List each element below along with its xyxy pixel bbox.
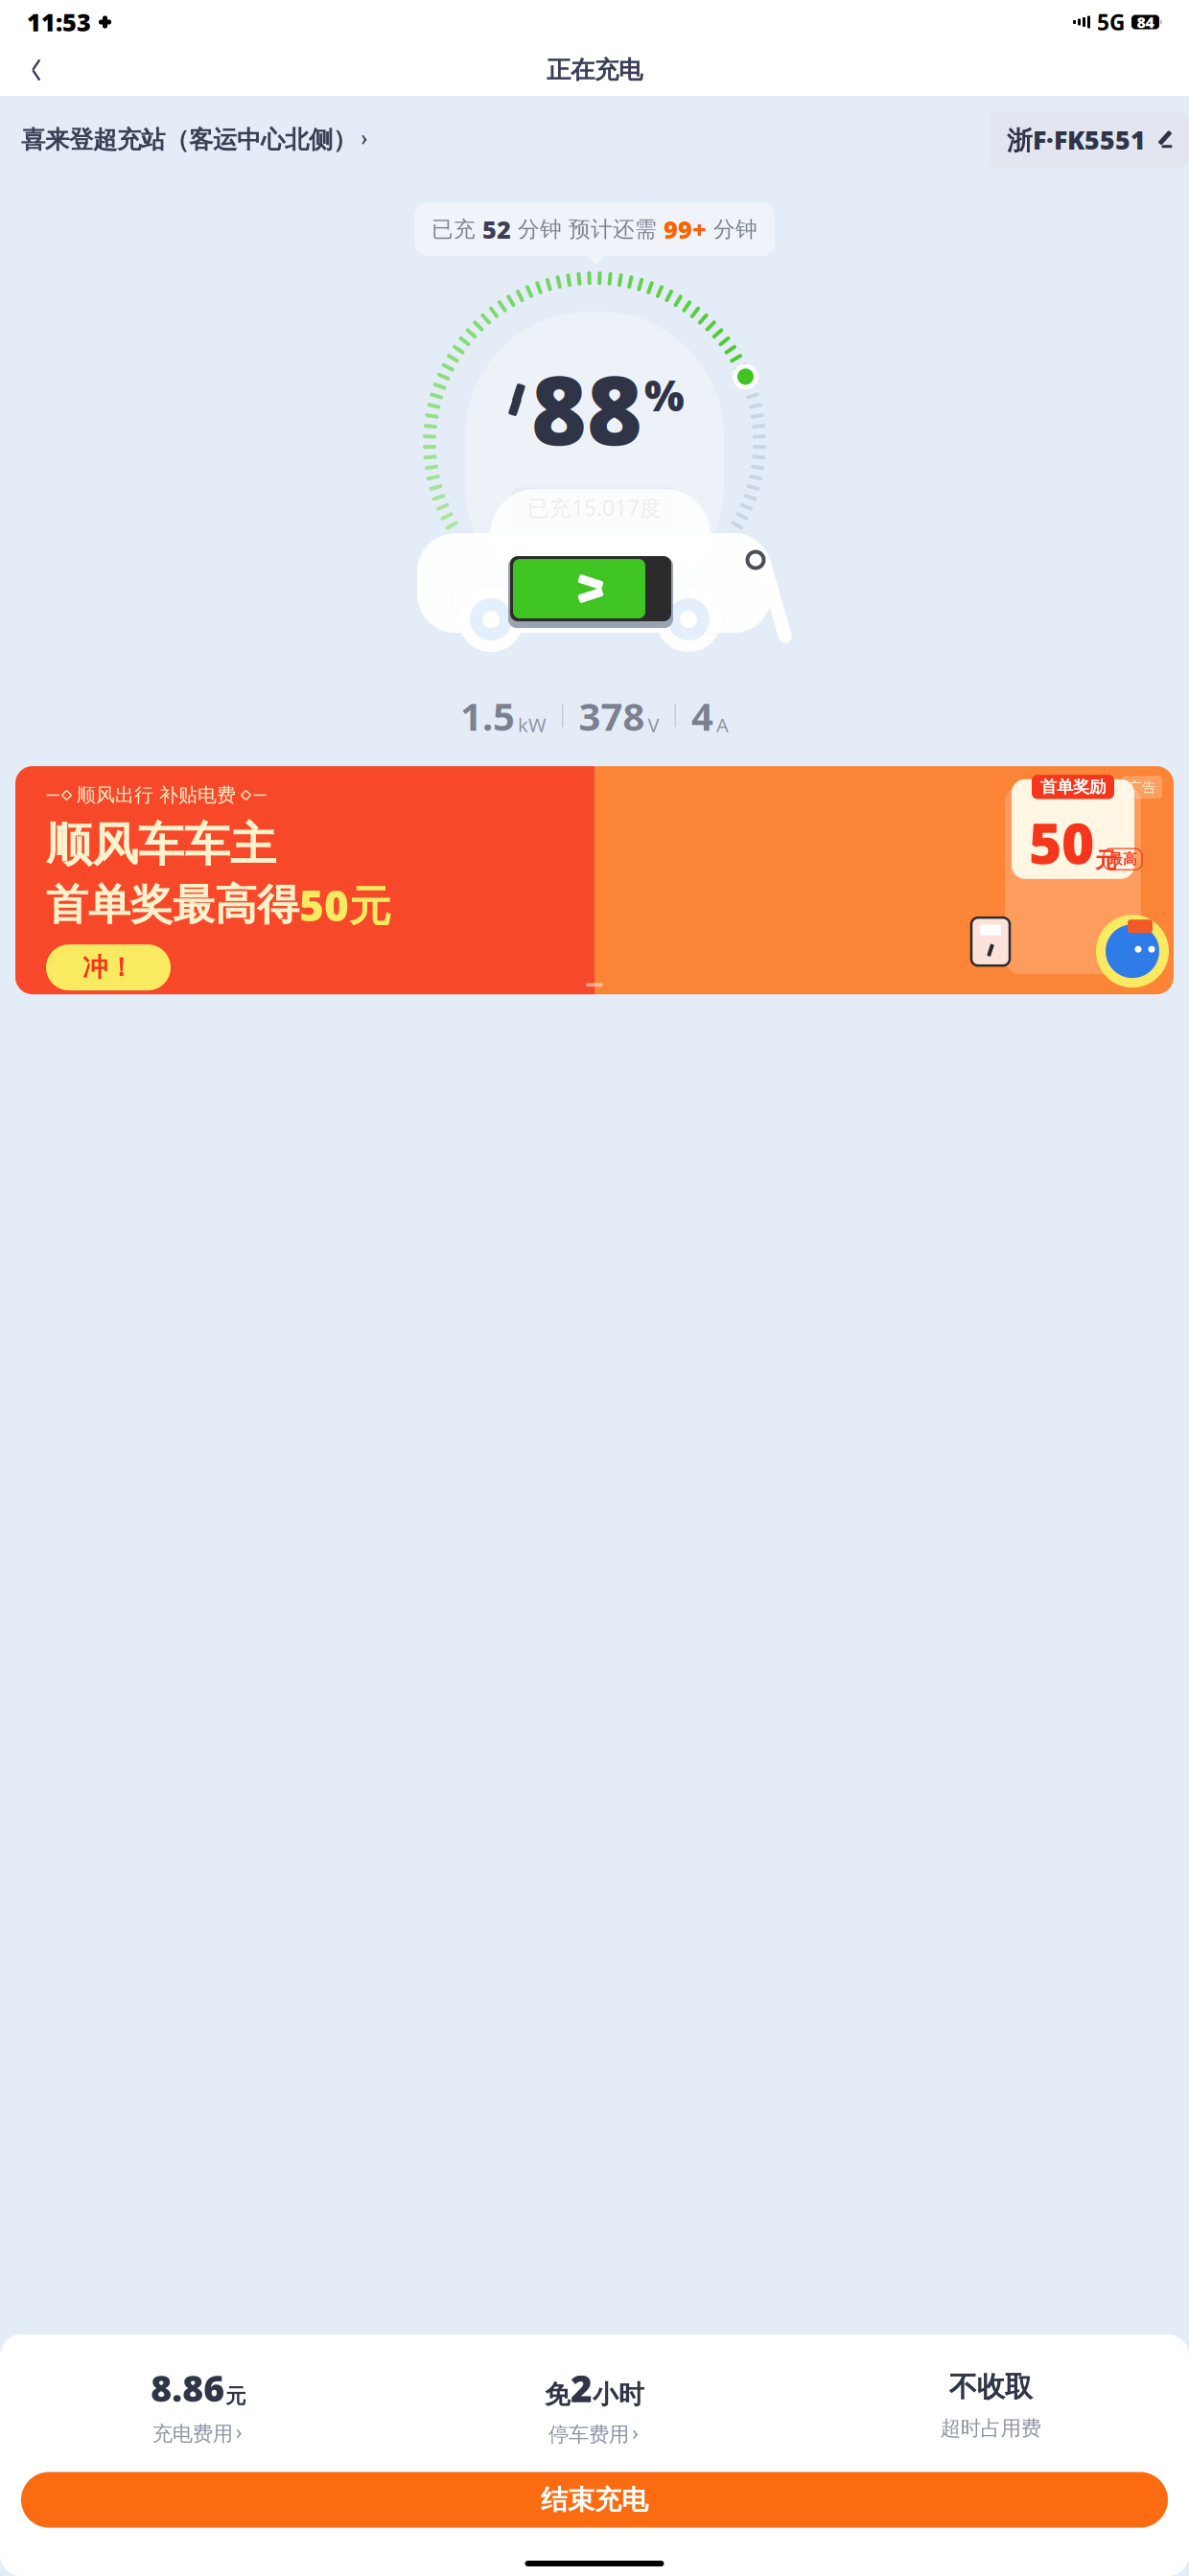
staticText: 已充15.017度 [527, 493, 662, 522]
staticText: 元 [226, 2384, 246, 2409]
staticText: 5G [1097, 8, 1125, 36]
staticText: 预计还需 [569, 216, 664, 243]
staticText: 4 [691, 690, 713, 741]
staticText: 分钟 [511, 216, 569, 243]
staticText: 停车费用 [548, 2422, 629, 2447]
staticText: A [716, 712, 729, 737]
staticText: 不收取 [949, 2370, 1033, 2404]
staticText: V [648, 712, 659, 737]
staticText: 8.86 [151, 2364, 225, 2412]
staticText: 冲！ [82, 952, 134, 983]
staticText: 免 [545, 2379, 571, 2411]
staticText: 元 [1095, 847, 1117, 874]
staticText: 52 [482, 213, 511, 245]
staticText: 充电费用 [152, 2421, 233, 2446]
staticText: 首单奖励 [1040, 777, 1106, 797]
staticText: 84 [1137, 12, 1154, 32]
staticText: 喜来登超充站（客运中心北侧） [21, 125, 357, 155]
staticText: 顺风出行 补贴电费 [77, 783, 236, 807]
staticText: 50 [1029, 805, 1094, 880]
button[interactable]: 结束充电 [21, 2472, 1168, 2528]
button[interactable]: 免 [396, 2363, 793, 2447]
staticText: 顺风车车主 [46, 817, 276, 873]
staticText: 1.5 [460, 690, 515, 741]
staticText: 分钟 [707, 216, 758, 243]
button[interactable]: 喜来登超充站（客运中心北侧） [0, 115, 369, 164]
staticText: 378 [579, 690, 645, 741]
staticText: 结束充电 [541, 2483, 648, 2516]
button[interactable]: 顺风出行 补贴电费 [0, 766, 1189, 994]
button[interactable]: 浙F·FK5551 [990, 111, 1189, 168]
staticText: 88 [531, 346, 642, 471]
staticText: 11:53 [27, 6, 91, 38]
staticText: 50元 [299, 877, 391, 933]
button[interactable]: 8.86 [0, 2364, 396, 2446]
staticText: % [644, 367, 685, 423]
staticText: 2 [571, 2363, 593, 2412]
staticText: 正在充电 [547, 55, 642, 85]
staticText: 浙F·FK5551 [1007, 123, 1146, 157]
staticText: 广告 [1128, 779, 1156, 796]
button[interactable]: Back [15, 49, 58, 91]
staticText: 已充 [431, 216, 482, 243]
staticText: 超时占用费 [940, 2416, 1041, 2441]
staticText: 最高 [1108, 851, 1137, 868]
staticText: 小时 [593, 2379, 644, 2411]
staticText: 首单奖最高得 [46, 879, 299, 931]
staticText: kW [518, 712, 547, 737]
staticText: 99+ [664, 213, 707, 245]
